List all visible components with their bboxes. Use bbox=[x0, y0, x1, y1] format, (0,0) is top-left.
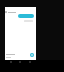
button[interactable]: Menu bbox=[5, 11, 7, 13]
button[interactable] bbox=[18, 14, 34, 18]
button[interactable] bbox=[5, 50, 36, 58]
button[interactable]: Menu bbox=[5, 7, 36, 15]
button[interactable]: Compose new message bbox=[30, 53, 34, 57]
